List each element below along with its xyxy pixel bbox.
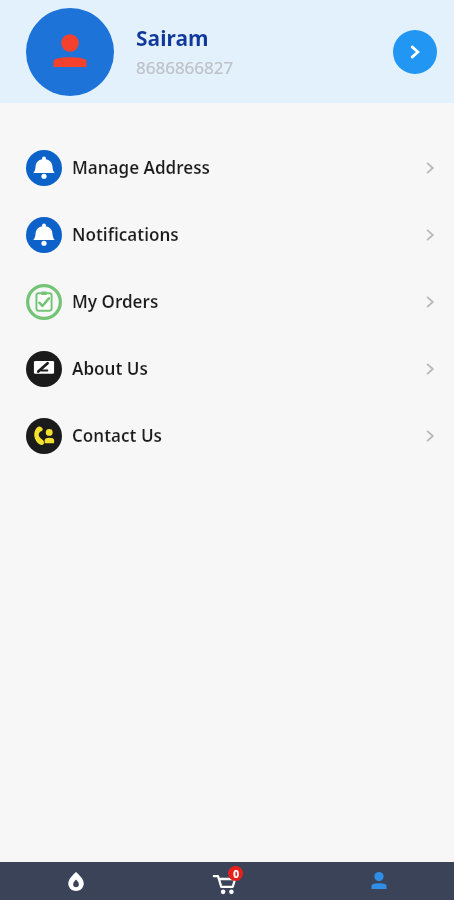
button[interactable]: Notifications — [0, 201, 454, 268]
button[interactable]: Sairam — [0, 0, 454, 103]
staticText: Sairam — [136, 24, 209, 53]
staticText: 0 — [233, 867, 239, 881]
button[interactable]: My Orders — [0, 268, 454, 335]
button[interactable]: Contact Us — [0, 402, 454, 469]
button[interactable]: Edit profile — [393, 30, 437, 74]
staticText: Manage Address — [72, 156, 423, 179]
staticText: Contact Us — [72, 424, 423, 447]
button[interactable]: About Us — [0, 335, 454, 402]
button[interactable]: Profile — [303, 862, 454, 900]
button[interactable]: Manage Address — [0, 134, 454, 201]
button[interactable]: Home — [0, 862, 152, 900]
staticText: 8686866827 — [136, 56, 234, 79]
staticText: My Orders — [72, 290, 423, 313]
staticText: Notifications — [72, 223, 423, 246]
button[interactable]: Cart, 0 items — [152, 862, 303, 900]
staticText: About Us — [72, 357, 423, 380]
